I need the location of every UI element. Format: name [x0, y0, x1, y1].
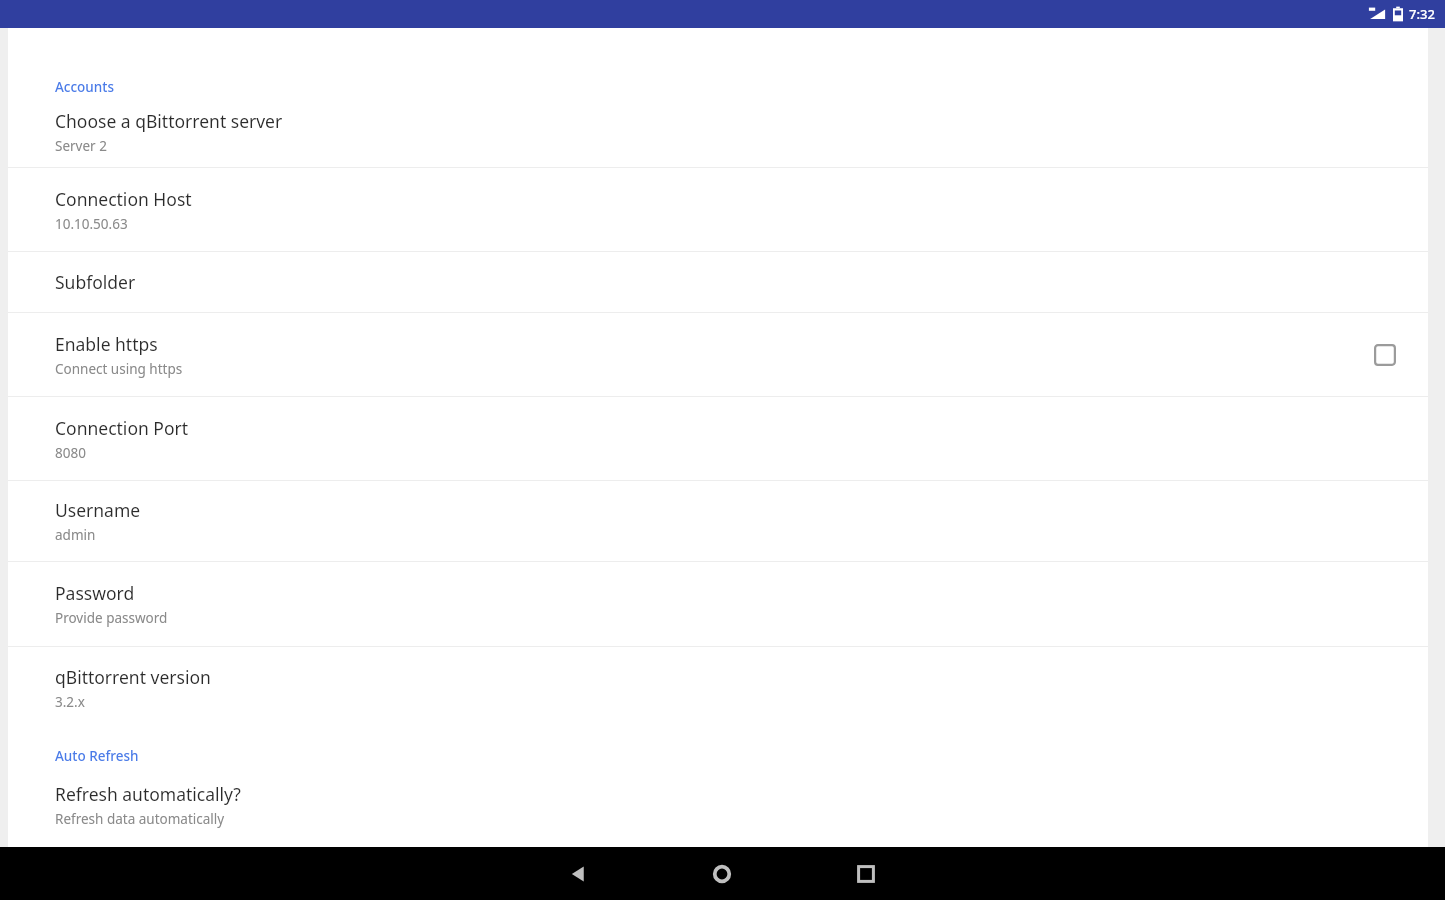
- staticText: Enable https: [55, 332, 158, 356]
- button[interactable]: Back: [530, 847, 626, 900]
- staticText: 3.2.x: [55, 693, 85, 711]
- staticText: 8080: [55, 444, 86, 462]
- staticText: Connection Port: [55, 416, 189, 440]
- staticText: 10.10.50.63: [55, 215, 128, 233]
- button[interactable]: Choose a qBittorrent server: [8, 96, 1428, 167]
- staticText: Subfolder: [55, 270, 136, 294]
- staticText: Provide password: [55, 609, 168, 627]
- button[interactable]: Refresh automatically?: [8, 765, 1428, 845]
- staticText: qBittorrent version: [55, 665, 211, 689]
- staticText: 7:32: [1409, 5, 1435, 23]
- staticText: Auto Refresh: [55, 747, 139, 765]
- button[interactable]: Enable https: [8, 313, 1428, 396]
- button[interactable]: Home: [674, 847, 770, 900]
- button[interactable]: qBittorrent version: [8, 647, 1428, 729]
- staticText: Connection Host: [55, 187, 192, 211]
- staticText: Refresh data automatically: [55, 810, 225, 828]
- other: Enable https checkbox: [1372, 342, 1398, 368]
- staticText: Connect using https: [55, 360, 183, 378]
- staticText: Accounts: [55, 78, 115, 96]
- staticText: Username: [55, 498, 141, 522]
- button[interactable]: Connection Port: [8, 397, 1428, 480]
- staticText: admin: [55, 526, 96, 544]
- staticText: Refresh automatically?: [55, 782, 241, 806]
- button[interactable]: Username: [8, 481, 1428, 561]
- staticText: Password: [55, 581, 135, 605]
- button[interactable]: Password: [8, 562, 1428, 646]
- staticText: Server 2: [55, 137, 107, 155]
- staticText: Choose a qBittorrent server: [55, 109, 283, 133]
- button[interactable]: Connection Host: [8, 168, 1428, 251]
- button[interactable]: Recent apps: [818, 847, 914, 900]
- button[interactable]: Subfolder: [8, 252, 1428, 312]
